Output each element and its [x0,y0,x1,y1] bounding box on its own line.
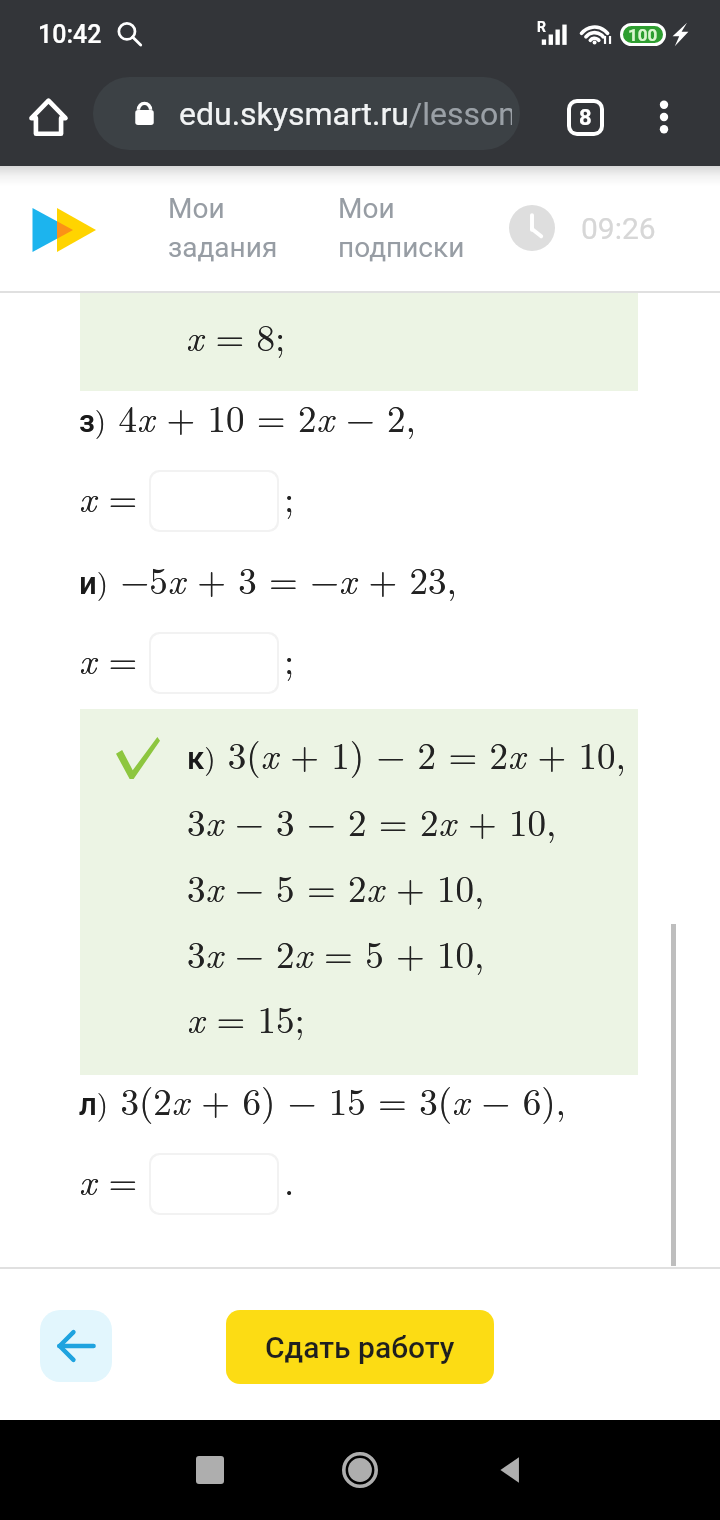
staticText: 3x − 5 = 2x + 10, [187,860,485,912]
staticText: x = [79,632,138,684]
staticText: x = [79,1153,138,1205]
button[interactable]: Назад [40,1310,112,1382]
button[interactable]: Таймер [509,205,555,251]
staticText: ; [284,470,295,522]
staticText: и) −5x + 3 = −x + 23, [79,552,457,604]
button[interactable]: Home [10,68,86,166]
staticText: edu.skysmart.ru/lesson [179,95,512,133]
staticText: Мои [338,192,395,225]
staticText: ; [284,632,295,684]
button[interactable]: Сдать работу [226,1310,494,1384]
staticText: x = 8; [186,309,286,361]
staticText: 3x − 3 − 2 = 2x + 10, [187,794,557,846]
staticText: к) 3(x + 1) − 2 = 2x + 10, [187,727,626,779]
staticText: x = 8; [186,309,286,361]
staticText: x = [79,1153,138,1205]
staticText: x = 15; [187,991,305,1043]
staticText: ; [284,632,295,684]
button[interactable]: Skysmart [30,206,96,254]
button[interactable]: Back [465,1420,555,1520]
staticText: x = 15; [187,991,305,1043]
staticText: Сдать работу [265,1330,455,1365]
staticText: 8 [579,105,592,131]
staticText: к) 3(x + 1) − 2 = 2x + 10, [187,727,626,779]
staticText: з) 4x + 10 = 2x − 2, [79,390,416,442]
staticText: 3x − 2x = 5 + 10, [187,926,485,978]
staticText: x = [79,470,138,522]
staticText: . [284,1153,295,1205]
staticText: л) 3(2x + 6) − 15 = 3(x − 6), [79,1073,566,1125]
button[interactable]: Мои [338,192,466,272]
staticText: 10:42 [38,20,102,49]
staticText: . [284,1153,295,1205]
staticText: 3x − 5 = 2x + 10, [187,860,485,912]
button[interactable]: Recent apps [165,1420,255,1520]
staticText: ; [284,470,295,522]
button[interactable]: Tabs [548,68,622,166]
button[interactable]: Home [315,1420,405,1520]
staticText: задания [168,231,278,264]
button[interactable]: edu.skysmart.ru/lesson [93,77,520,150]
staticText: 3x − 3 − 2 = 2x + 10, [187,794,557,846]
button[interactable]: Мои [168,192,280,272]
staticText: x = [79,632,138,684]
button[interactable]: More options [634,68,694,166]
staticText: R [537,19,546,35]
staticText: 3x − 2x = 5 + 10, [187,926,485,978]
staticText: x = [79,470,138,522]
staticText: л) 3(2x + 6) − 15 = 3(x − 6), [79,1073,566,1125]
staticText: Мои [168,192,225,225]
staticText: з) 4x + 10 = 2x − 2, [79,390,416,442]
staticText: и) −5x + 3 = −x + 23, [79,552,457,604]
staticText: 100 [628,25,658,45]
staticText: подписки [338,231,465,264]
staticText: 09:26 [581,211,656,246]
